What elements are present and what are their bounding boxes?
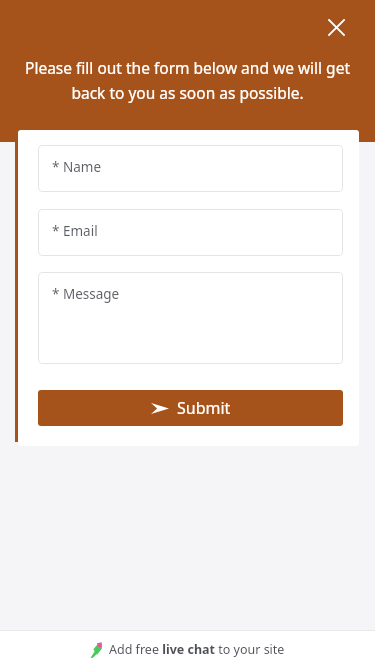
staticText: * Name [52,158,102,176]
staticText: Please fill out the form below and we wi… [22,57,353,103]
button[interactable]: * Name [38,145,343,192]
button[interactable]: Submit [38,390,343,426]
button[interactable]: Close [318,9,354,45]
button[interactable]: * Email [38,209,343,256]
staticText: * Message [52,285,120,303]
button[interactable]: * Message [38,272,343,364]
staticText: Add free live chat to your site [109,641,285,658]
staticText: * Email [52,222,98,240]
staticText: Submit [177,397,231,419]
button[interactable]: Add free live chat to your site [0,631,375,667]
